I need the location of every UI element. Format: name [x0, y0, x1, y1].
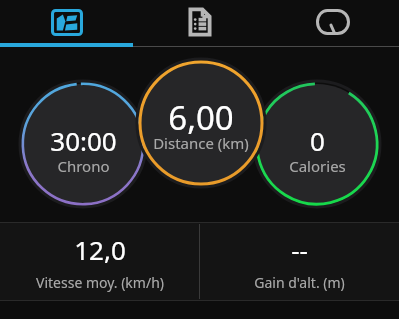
staticText: -- [291, 232, 308, 267]
staticText: 30:00 [50, 123, 117, 158]
staticText: Chrono [57, 156, 110, 176]
button[interactable]: Summary [133, 0, 266, 44]
button[interactable]: Chrono 30:00 [20, 81, 146, 207]
staticText: Vitesse moy. (km/h) [36, 273, 164, 292]
staticText: 12,0 [74, 232, 126, 267]
button[interactable]: Calories 0 [254, 81, 380, 207]
button[interactable]: Distance 6,00 km [137, 59, 265, 187]
staticText: Distance (km) [153, 133, 249, 153]
button[interactable]: Gain d'alt. (m) [200, 222, 399, 301]
staticText: Gain d'alt. (m) [254, 273, 345, 292]
button[interactable]: Map [0, 0, 133, 44]
button[interactable]: Laps [266, 0, 399, 44]
staticText: Calories [289, 156, 346, 176]
button[interactable]: Vitesse moy. (km/h) [0, 222, 199, 301]
staticText: 6,00 [168, 95, 234, 140]
staticText: 0 [310, 123, 325, 158]
